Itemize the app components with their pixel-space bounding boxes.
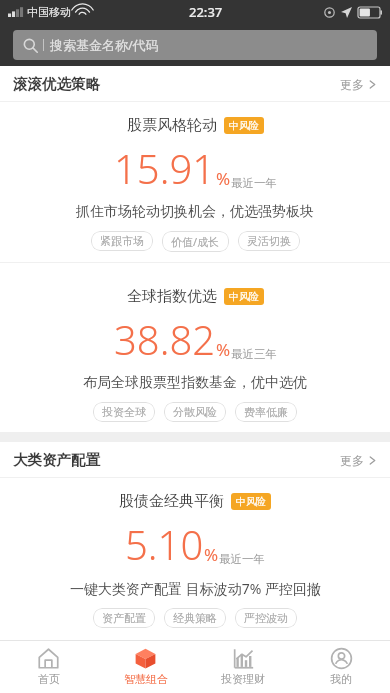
- button[interactable]: 股债金经典平衡: [0, 478, 390, 638]
- staticText: 搜索基金名称/代码: [50, 36, 159, 54]
- staticText: 更多: [340, 453, 364, 468]
- staticText: 费率低廉: [244, 405, 288, 419]
- staticText: 中风险: [229, 290, 259, 303]
- button[interactable]: 我的: [292, 641, 390, 693]
- staticText: 灵活切换: [247, 234, 291, 248]
- staticText: 布局全球股票型指数基金，优中选优: [83, 374, 307, 392]
- staticText: 智慧组合: [124, 672, 168, 686]
- other: 首页: [38, 648, 59, 669]
- staticText: 22:37: [189, 3, 223, 21]
- staticText: 紧跟市场: [100, 234, 144, 248]
- staticText: 中风险: [236, 495, 266, 508]
- staticText: 股债金经典平衡: [119, 492, 224, 511]
- staticText: 一键大类资产配置 目标波动7% 严控回撤: [70, 579, 321, 598]
- staticText: 价值/成长: [171, 234, 220, 249]
- staticText: 首页: [38, 672, 60, 686]
- button[interactable]: 投资理财: [194, 641, 292, 693]
- staticText: 5.10: [125, 517, 204, 571]
- staticText: 抓住市场轮动切换机会，优选强势板块: [76, 203, 314, 221]
- other: 投资理财: [233, 648, 254, 669]
- staticText: 全球指数优选: [127, 287, 217, 306]
- button[interactable]: 股票风格轮动: [0, 102, 390, 273]
- staticText: 最近一年: [219, 552, 265, 566]
- button[interactable]: 滚滚优选策略: [13, 66, 377, 102]
- staticText: 中风险: [229, 119, 259, 132]
- button[interactable]: 智慧组合: [97, 641, 194, 693]
- staticText: 投资全球: [102, 405, 146, 419]
- staticText: %: [216, 167, 231, 190]
- staticText: 38.82: [114, 312, 216, 366]
- staticText: 经典策略: [173, 611, 217, 625]
- button[interactable]: 全球指数优选: [0, 273, 390, 432]
- staticText: 投资理财: [221, 672, 265, 686]
- button[interactable]: 大类资产配置: [13, 442, 377, 478]
- staticText: 更多: [340, 77, 364, 92]
- staticText: 我的: [330, 672, 352, 686]
- staticText: 严控波动: [244, 611, 288, 625]
- staticText: 最近一年: [231, 176, 277, 190]
- staticText: 滚滚优选策略: [13, 75, 100, 93]
- staticText: %: [216, 338, 231, 361]
- staticText: 大类资产配置: [13, 451, 100, 469]
- staticText: %: [204, 543, 219, 566]
- button[interactable]: 首页: [0, 641, 97, 693]
- staticText: 中国移动: [27, 5, 71, 19]
- staticText: 资产配置: [102, 611, 146, 625]
- staticText: 15.91: [114, 141, 216, 195]
- other: 智慧组合: [135, 648, 156, 669]
- other: 我的: [331, 648, 352, 669]
- staticText: 最近三年: [231, 347, 277, 361]
- button[interactable]: 搜索基金名称/代码: [13, 30, 377, 60]
- staticText: 股票风格轮动: [127, 116, 217, 135]
- staticText: 分散风险: [173, 405, 217, 419]
